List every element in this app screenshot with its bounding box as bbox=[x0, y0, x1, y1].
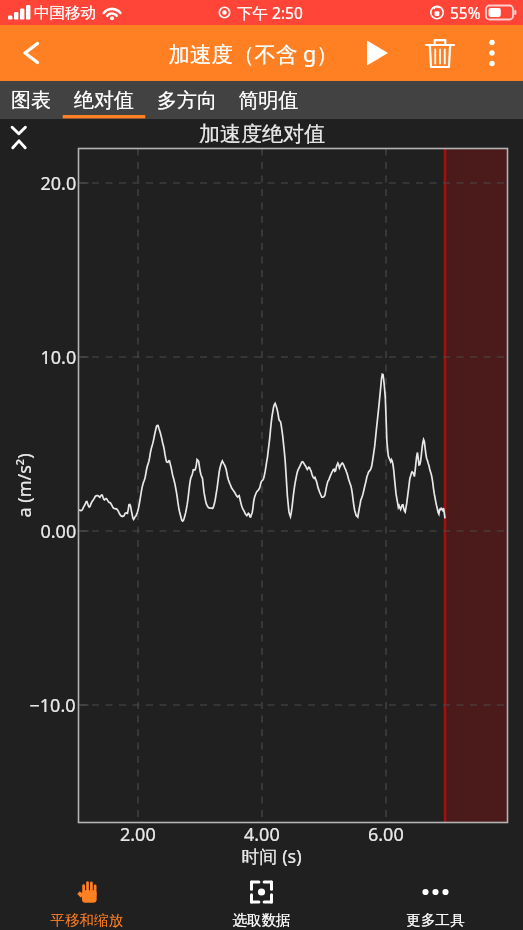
button[interactable]: 更多选项 bbox=[471, 25, 523, 81]
button[interactable]: 选取数据 bbox=[175, 858, 349, 930]
button[interactable]: 开始 bbox=[367, 25, 419, 81]
button[interactable]: 更多工具 bbox=[349, 858, 523, 930]
button[interactable]: 返回 bbox=[0, 25, 62, 81]
button[interactable]: 删除 bbox=[419, 25, 471, 81]
button[interactable] bbox=[0, 81, 61, 119]
button[interactable]: 收起 bbox=[6, 119, 32, 136]
button[interactable] bbox=[227, 81, 310, 119]
button[interactable]: 展开 bbox=[6, 136, 32, 153]
button[interactable] bbox=[144, 81, 227, 119]
button[interactable] bbox=[61, 81, 144, 119]
button[interactable]: 平移和缩放 bbox=[0, 858, 175, 930]
